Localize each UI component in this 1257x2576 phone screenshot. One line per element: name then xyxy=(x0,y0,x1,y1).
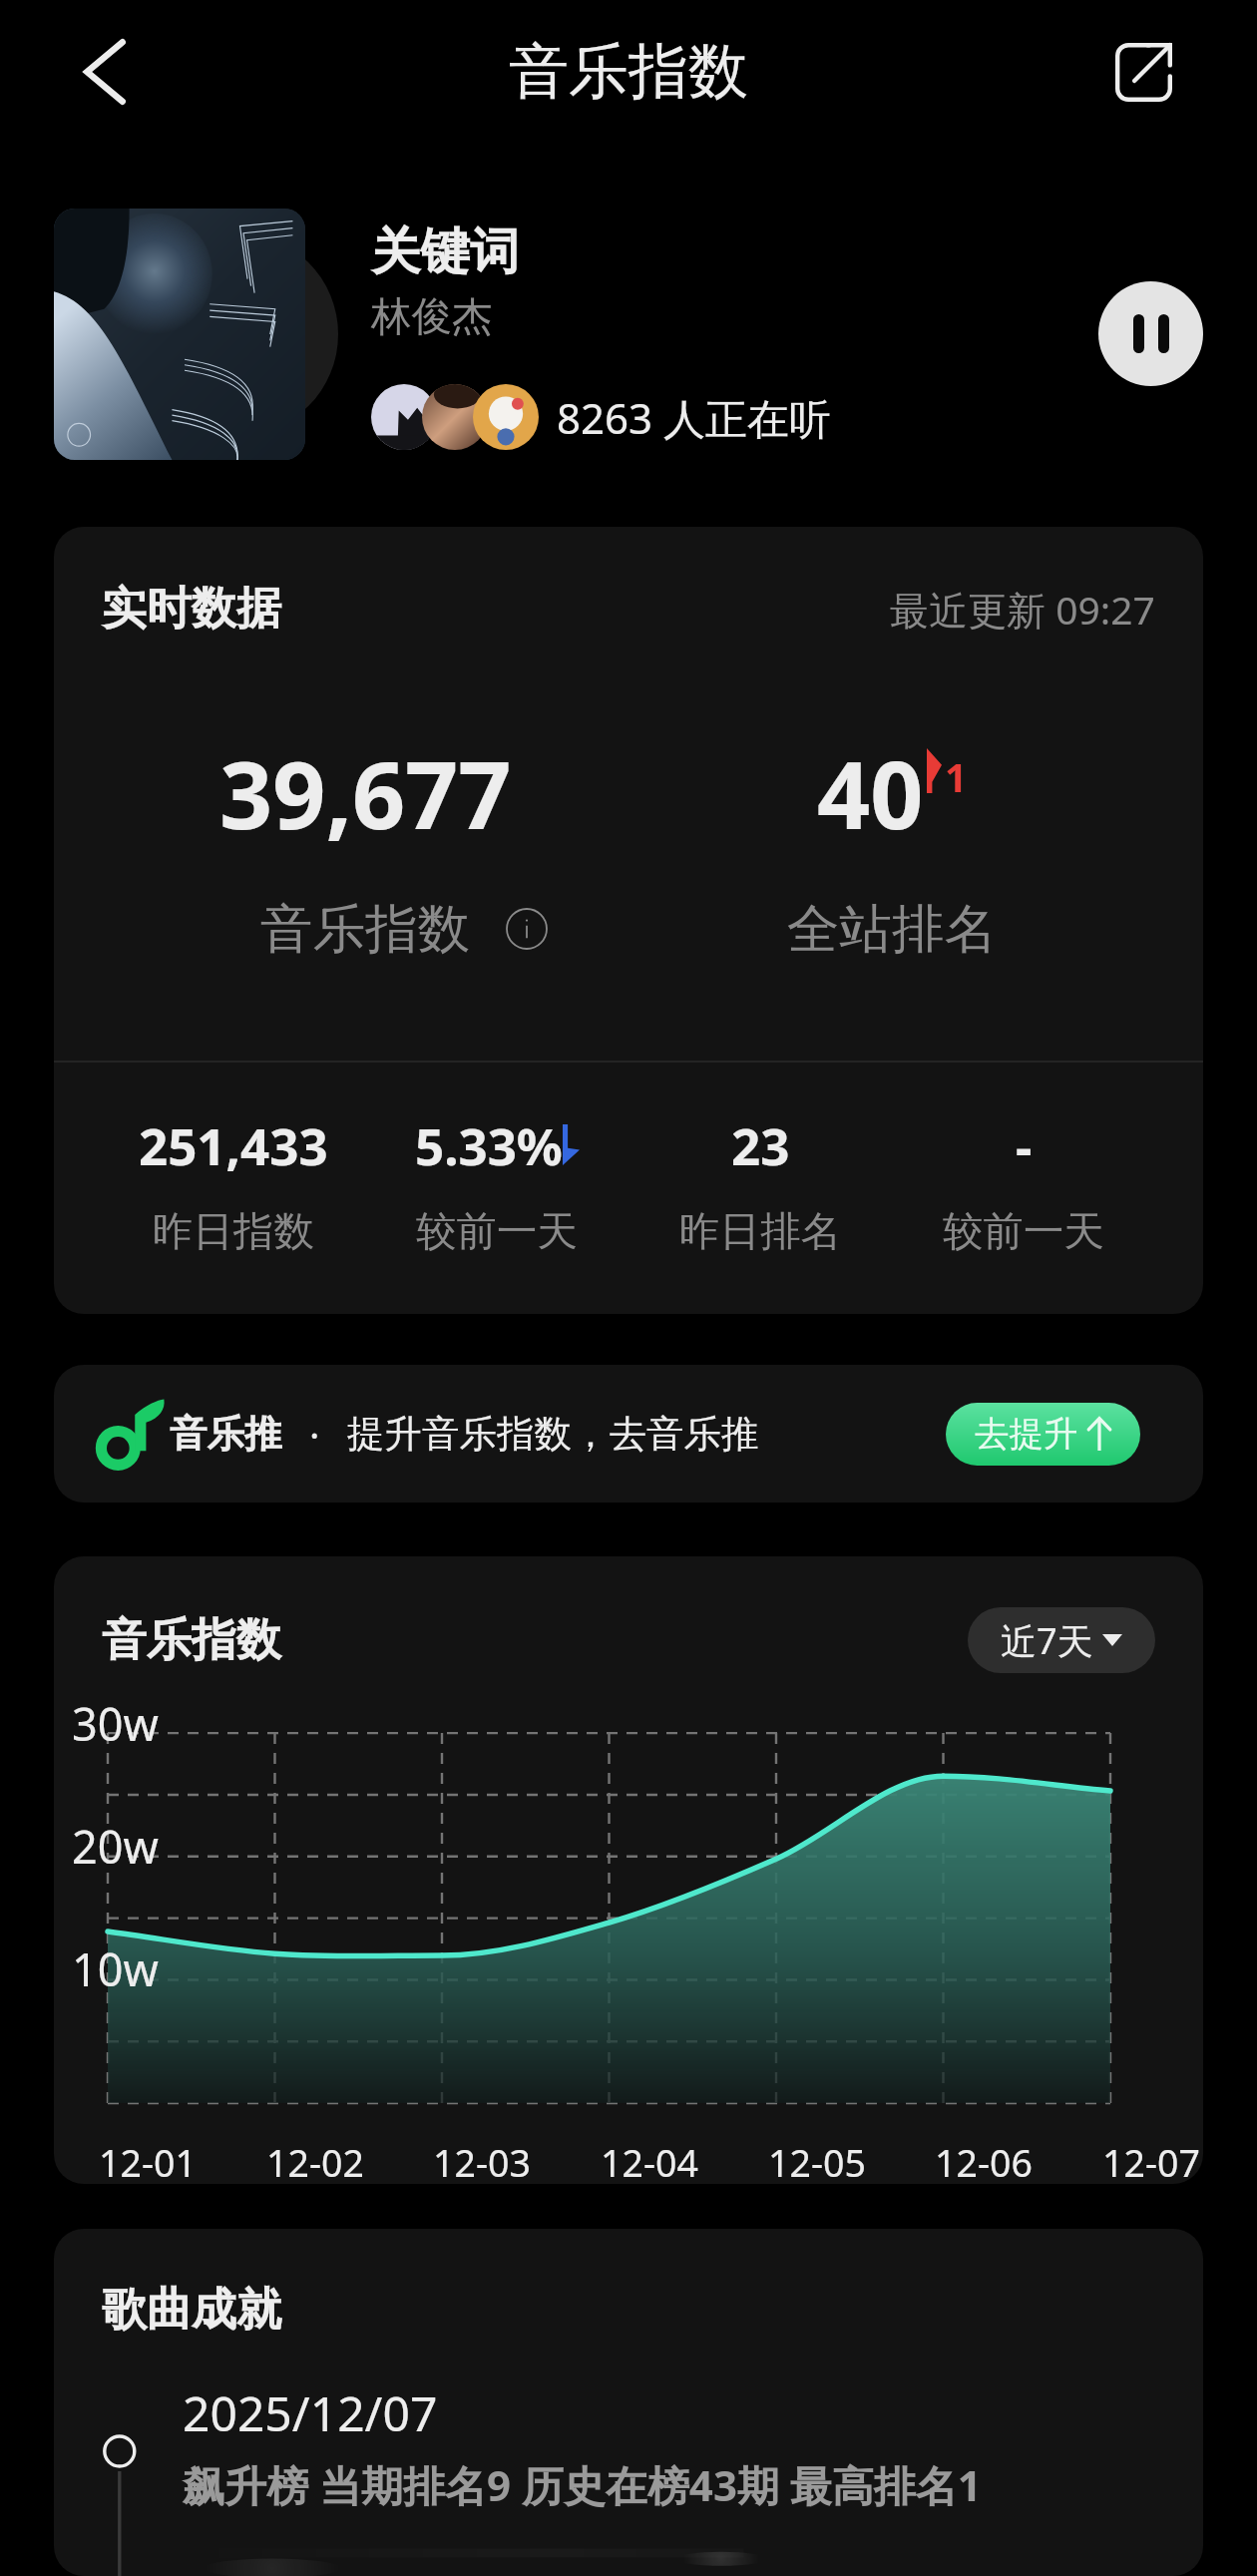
button[interactable]: Back xyxy=(36,3,174,141)
button[interactable]: 音乐推 xyxy=(54,1365,1203,1503)
staticText: 10w xyxy=(72,1938,159,1999)
staticText: 40 xyxy=(817,730,924,857)
staticText: 39,677 xyxy=(219,730,512,857)
staticText: 12-06 xyxy=(935,2137,1033,2184)
staticText: 30w xyxy=(72,1693,159,1754)
staticText: 5.33% xyxy=(415,1110,563,1179)
staticText: 林俊杰 xyxy=(371,291,493,342)
staticText: 昨日排名 xyxy=(679,1206,841,1257)
button[interactable]: Pause xyxy=(1098,281,1203,386)
staticText: 较前一天 xyxy=(416,1206,578,1257)
staticText: 12-03 xyxy=(433,2137,531,2184)
staticText: 音乐推 xyxy=(170,1411,282,1458)
staticText: 最近更新 09:27 xyxy=(890,583,1155,636)
staticText: 昨日指数 xyxy=(153,1206,314,1257)
staticText: 全站排名 xyxy=(787,896,997,962)
staticText: 12-01 xyxy=(99,2137,197,2184)
staticText: 8263 人正在听 xyxy=(557,389,832,446)
staticText: 提升音乐指数，去音乐推 xyxy=(347,1411,759,1458)
staticText: 2025/12/07 xyxy=(183,2380,438,2445)
staticText: 251,433 xyxy=(139,1110,328,1179)
staticText: 音乐指数 xyxy=(260,896,470,962)
staticText: · xyxy=(309,1408,320,1461)
staticText: 飙升榜 当期排名9 历史在榜43期 最高排名1 xyxy=(183,2456,982,2513)
staticText: 关键词 xyxy=(371,220,520,282)
staticText: 12-02 xyxy=(266,2137,364,2184)
staticText: 20w xyxy=(72,1816,159,1877)
button[interactable]: 去提升 xyxy=(946,1403,1140,1466)
staticText: - xyxy=(1016,1110,1033,1179)
staticText: 12-04 xyxy=(601,2137,698,2184)
button[interactable]: Share xyxy=(1074,3,1212,141)
staticText: 12-07 xyxy=(1102,2137,1200,2184)
staticText: 23 xyxy=(731,1110,790,1179)
button[interactable]: 近7天 xyxy=(968,1607,1155,1673)
staticText: 实时数据 xyxy=(102,581,281,638)
staticText: 音乐指数 xyxy=(509,34,748,110)
staticText: 音乐指数 xyxy=(102,1612,281,1669)
staticText: 近7天 xyxy=(1001,1616,1093,1665)
staticText: 1 xyxy=(945,750,968,803)
staticText: 去提升 xyxy=(975,1413,1078,1456)
staticText: 歌曲成就 xyxy=(102,2282,281,2339)
staticText: 较前一天 xyxy=(943,1206,1104,1257)
staticText: 12-05 xyxy=(768,2137,866,2184)
